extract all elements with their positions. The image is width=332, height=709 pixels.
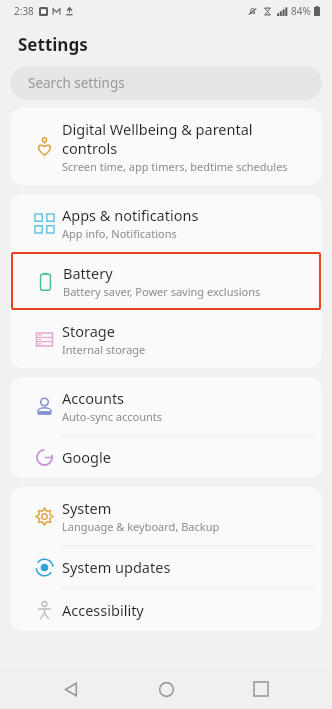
staticText: Settings bbox=[18, 33, 88, 56]
staticText: 84% bbox=[291, 4, 311, 18]
button[interactable]: Storage bbox=[10, 310, 322, 368]
staticText: Google bbox=[62, 447, 111, 467]
staticText: Search settings bbox=[28, 74, 125, 92]
staticText: Screen time, app timers, bedtime schedul… bbox=[62, 159, 288, 174]
staticText: Battery bbox=[63, 263, 113, 283]
button[interactable]: Digital Wellbeing & parental controls bbox=[10, 108, 322, 185]
button[interactable]: Home bbox=[142, 669, 190, 709]
staticText: Accounts bbox=[62, 388, 125, 408]
button[interactable]: Battery bbox=[11, 252, 321, 310]
button[interactable]: Accessibility bbox=[10, 589, 322, 631]
button[interactable]: Google bbox=[10, 436, 322, 478]
button[interactable]: System updates bbox=[10, 546, 322, 588]
staticText: Apps & notifications bbox=[62, 205, 199, 225]
staticText: System updates bbox=[62, 557, 171, 577]
button[interactable]: Search settings bbox=[10, 66, 322, 100]
staticText: Auto-sync accounts bbox=[62, 409, 163, 424]
staticText: Digital Wellbeing & parental controls bbox=[62, 119, 253, 158]
button[interactable]: Accounts bbox=[10, 377, 322, 435]
staticText: Language & keyboard, Backup bbox=[62, 519, 220, 534]
staticText: Storage bbox=[62, 321, 115, 341]
staticText: Internal storage bbox=[62, 342, 146, 357]
staticText: Battery saver, Power saving exclusions bbox=[63, 284, 261, 299]
button[interactable]: Apps & notifications bbox=[10, 194, 322, 252]
button[interactable]: Recent apps bbox=[237, 669, 285, 709]
staticText: 2:38 bbox=[14, 4, 34, 18]
staticText: Accessibility bbox=[62, 600, 144, 620]
staticText: App info, Notifications bbox=[62, 226, 177, 241]
button[interactable]: System bbox=[10, 487, 322, 545]
button[interactable]: Back bbox=[47, 669, 95, 709]
staticText: System bbox=[62, 498, 112, 518]
